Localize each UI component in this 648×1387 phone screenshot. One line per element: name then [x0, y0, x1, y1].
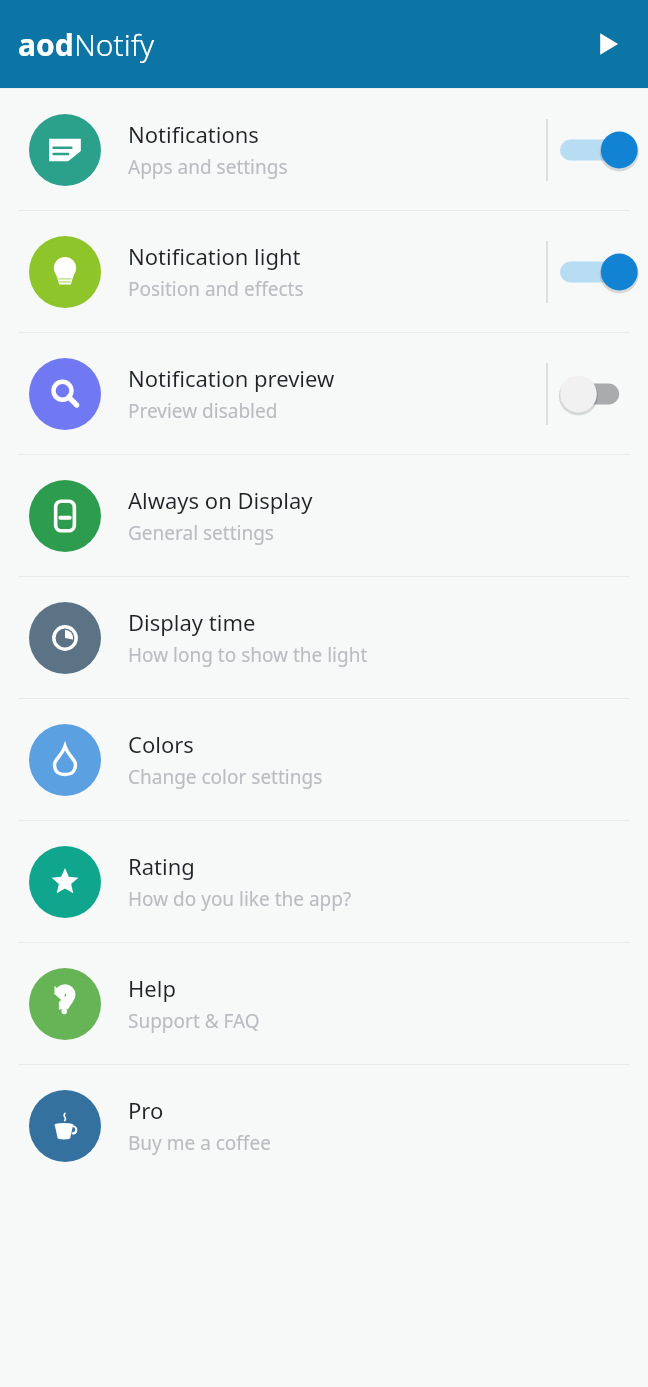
button[interactable]: Notifications — [0, 89, 648, 210]
staticText: Notify — [74, 24, 155, 65]
staticText: Preview disabled — [128, 398, 278, 424]
staticText: Notification light — [128, 241, 301, 271]
staticText: How do you like the app? — [128, 886, 352, 912]
staticText: Apps and settings — [128, 154, 288, 180]
staticText: Always on Display — [128, 485, 313, 515]
button[interactable]: Pro — [0, 1065, 648, 1186]
staticText: Rating — [128, 851, 195, 881]
button[interactable]: Display time — [0, 577, 648, 698]
staticText: Display time — [128, 607, 256, 637]
staticText: How long to show the light — [128, 642, 368, 668]
staticText: Pro — [128, 1095, 164, 1125]
button[interactable]: Colors — [0, 699, 648, 820]
button[interactable]: Rating — [0, 821, 648, 942]
staticText: aod — [18, 24, 74, 65]
staticText: Colors — [128, 729, 194, 759]
staticText: Help — [128, 973, 176, 1003]
staticText: General settings — [128, 520, 274, 546]
staticText: Notification preview — [128, 363, 335, 393]
button[interactable]: Always on Display — [0, 455, 648, 576]
button[interactable]: Play — [586, 22, 630, 66]
button[interactable]: Toggle Notification preview — [548, 333, 648, 454]
staticText: Support & FAQ — [128, 1008, 260, 1034]
staticText: Buy me a coffee — [128, 1130, 271, 1156]
staticText: Position and effects — [128, 276, 304, 302]
button[interactable]: Notification light — [0, 211, 648, 332]
staticText: Change color settings — [128, 764, 323, 790]
button[interactable]: Toggle Notification light — [548, 211, 648, 332]
button[interactable]: Help — [0, 943, 648, 1064]
staticText: Notifications — [128, 119, 259, 149]
button[interactable]: Toggle Notifications — [548, 89, 648, 210]
button[interactable]: Notification preview — [0, 333, 648, 454]
